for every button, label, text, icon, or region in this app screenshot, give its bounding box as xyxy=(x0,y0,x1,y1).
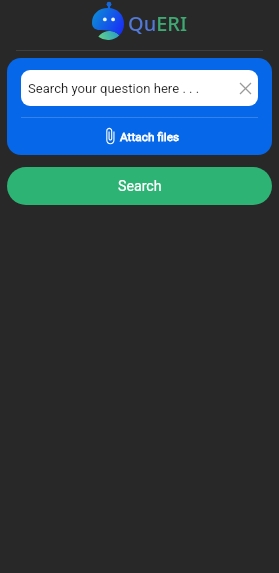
button[interactable]: Clear xyxy=(235,78,256,99)
button[interactable]: Attach files xyxy=(21,118,258,155)
button[interactable]: Search your question here . . . xyxy=(21,70,258,106)
staticText: Search your question here . . . xyxy=(28,81,235,96)
staticText: Search xyxy=(118,178,162,195)
button[interactable]: Search xyxy=(7,167,272,205)
staticText: Attach files xyxy=(120,130,180,144)
staticText: QuERI xyxy=(128,10,188,37)
